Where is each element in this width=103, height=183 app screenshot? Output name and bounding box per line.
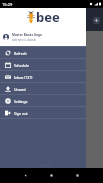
staticText: Settings [14,99,28,104]
staticText: Master Banas Gaga [12,33,42,37]
button[interactable]: Unsent [0,83,86,95]
staticText: Refresh [14,51,27,56]
staticText: Schedule [14,63,29,68]
staticText: Unsent [14,87,26,92]
button[interactable]: Compose [93,17,100,24]
staticText: Sign out [14,111,28,116]
button[interactable]: Inbox (137) [0,71,86,83]
button[interactable]: Sign out [0,107,86,119]
staticText: 15:29 [2,2,13,7]
button[interactable]: Recents [75,173,80,178]
staticText: Inbox (137) [14,75,33,80]
button[interactable]: Settings [0,95,86,107]
button[interactable]: Schedule [0,59,86,71]
button[interactable]: Refresh [0,47,86,59]
staticText: bee [36,8,60,26]
button[interactable]: Back [23,173,28,178]
button[interactable]: Home [49,173,54,178]
staticText: bakrtyre.st..dubrak [12,38,37,42]
staticText: v19.4 [41,163,50,168]
